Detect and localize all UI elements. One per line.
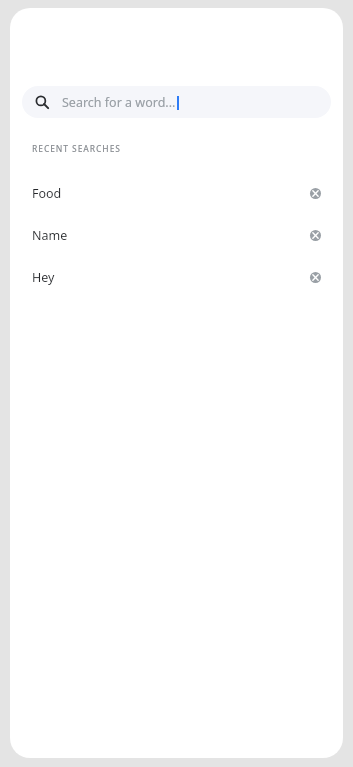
button[interactable]: Remove Name from recent searches: [305, 225, 325, 245]
staticText: Hey: [32, 269, 55, 286]
button[interactable]: Remove Hey from recent searches: [305, 267, 325, 287]
staticText: Name: [32, 227, 68, 244]
button[interactable]: Food: [10, 172, 343, 214]
button[interactable]: Name: [10, 214, 343, 256]
staticText: Food: [32, 185, 62, 202]
button[interactable]: Remove Food from recent searches: [305, 183, 325, 203]
staticText: Search for a word...: [62, 94, 176, 111]
button[interactable]: Hey: [10, 256, 343, 298]
button[interactable]: Search for a word...: [22, 86, 331, 118]
staticText: RECENT SEARCHES: [32, 143, 121, 155]
